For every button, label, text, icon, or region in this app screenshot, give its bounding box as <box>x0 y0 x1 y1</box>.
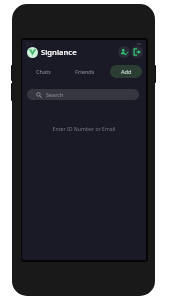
staticText: Search <box>46 91 64 98</box>
staticText: 9:41 <box>26 41 35 47</box>
staticText: Friends <box>75 68 95 76</box>
staticText: Add <box>121 68 132 76</box>
button[interactable]: Chats <box>36 65 51 78</box>
button[interactable]: Add contact <box>118 46 130 58</box>
staticText: Enter ID Number or Email <box>22 125 146 132</box>
button[interactable]: Log out <box>131 46 143 58</box>
button[interactable]: Search <box>27 89 139 100</box>
button[interactable]: Add <box>110 65 142 78</box>
staticText: Signlance <box>41 47 77 57</box>
staticText: Chats <box>36 68 51 76</box>
button[interactable]: Friends <box>75 65 95 78</box>
